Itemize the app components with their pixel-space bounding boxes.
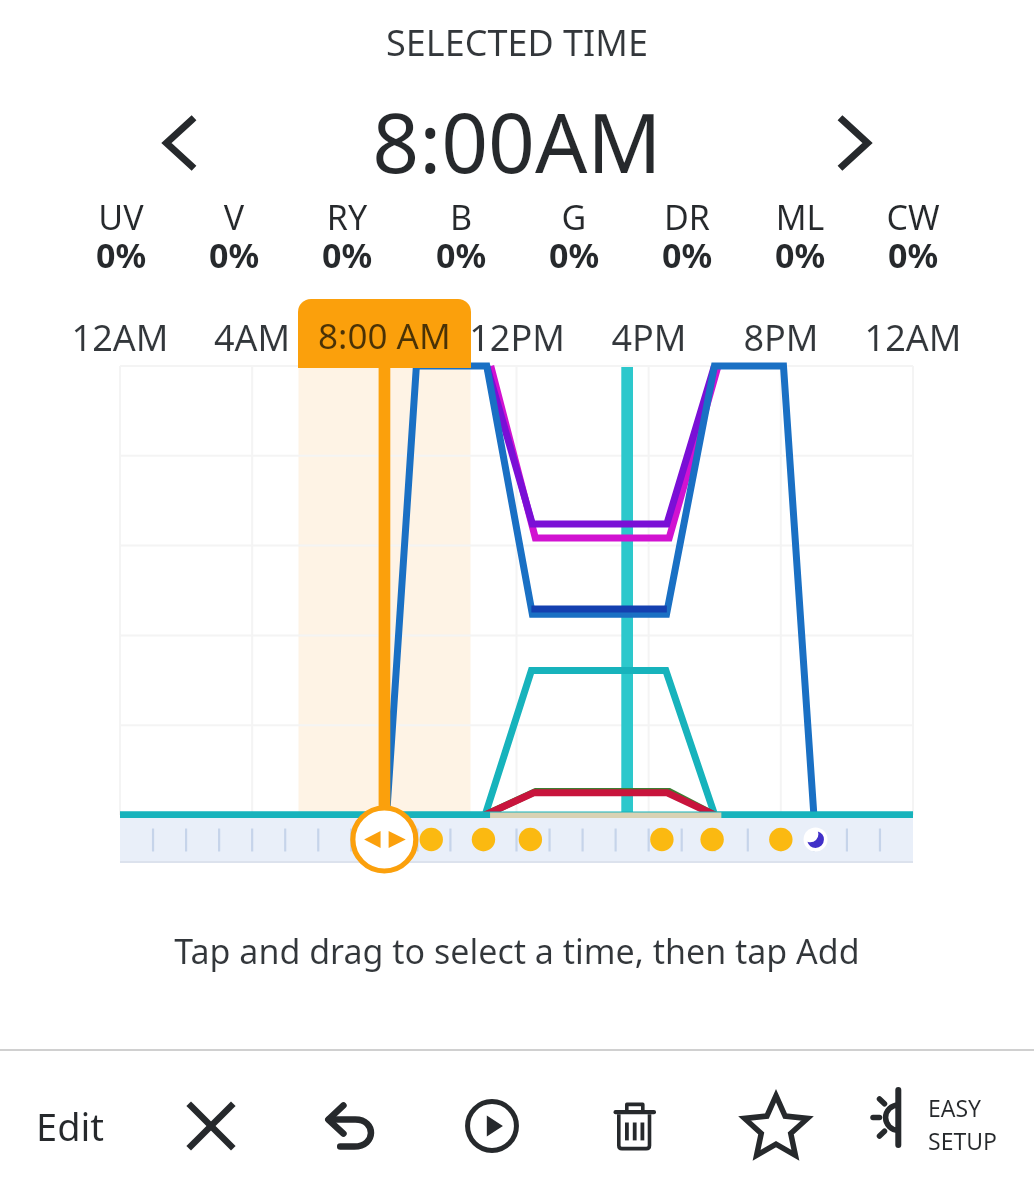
- staticText: 0%: [174, 232, 294, 278]
- button[interactable]: UV: [61, 194, 181, 274]
- staticText: SETUP: [928, 1125, 997, 1156]
- button[interactable]: 8:00 AM: [298, 299, 471, 368]
- staticText: 0%: [853, 232, 973, 278]
- staticText: CW: [853, 194, 973, 240]
- staticText: EASY: [928, 1092, 982, 1123]
- staticText: 0%: [61, 232, 181, 278]
- staticText: DR: [627, 194, 747, 240]
- staticText: 0%: [401, 232, 521, 278]
- staticText: SELECTED TIME: [0, 18, 1034, 67]
- staticText: ML: [740, 194, 860, 240]
- staticText: 8AM: [304, 313, 464, 362]
- staticText: RY: [287, 194, 407, 240]
- staticText: V: [174, 194, 294, 240]
- staticText: 0%: [287, 232, 407, 278]
- staticText: G: [514, 194, 634, 240]
- button[interactable]: Undo: [296, 1051, 406, 1200]
- button[interactable]: ML: [740, 194, 860, 274]
- button[interactable]: DR: [627, 194, 747, 274]
- staticText: 12PM: [437, 313, 597, 362]
- staticText: 4AM: [172, 313, 332, 362]
- staticText: 8:00 AM: [318, 312, 451, 360]
- button[interactable]: EASY: [852, 1051, 1034, 1200]
- staticText: 12AM: [40, 313, 200, 362]
- staticText: 12AM: [833, 313, 993, 362]
- button[interactable]: Favorite: [721, 1051, 831, 1200]
- staticText: 8:00AM: [0, 85, 1034, 197]
- button[interactable]: B: [401, 194, 521, 274]
- button[interactable]: CW: [853, 194, 973, 274]
- staticText: 4PM: [569, 313, 729, 362]
- button[interactable]: Close: [156, 1051, 266, 1200]
- button[interactable]: V: [174, 194, 294, 274]
- staticText: 0%: [627, 232, 747, 278]
- staticText: Edit: [36, 1100, 105, 1152]
- staticText: Tap and drag to select a time, then tap …: [0, 928, 1034, 974]
- button[interactable]: Play: [437, 1051, 547, 1200]
- button[interactable]: Next time: [804, 96, 904, 190]
- button[interactable]: Edit: [8, 1051, 132, 1200]
- button[interactable]: RY: [287, 194, 407, 274]
- staticText: B: [401, 194, 521, 240]
- staticText: 8PM: [701, 313, 861, 362]
- staticText: 0%: [514, 232, 634, 278]
- staticText: UV: [61, 194, 181, 240]
- button[interactable]: Previous time: [130, 96, 230, 190]
- staticText: 0%: [740, 232, 860, 278]
- button[interactable]: G: [514, 194, 634, 274]
- button[interactable]: Delete: [579, 1051, 689, 1200]
